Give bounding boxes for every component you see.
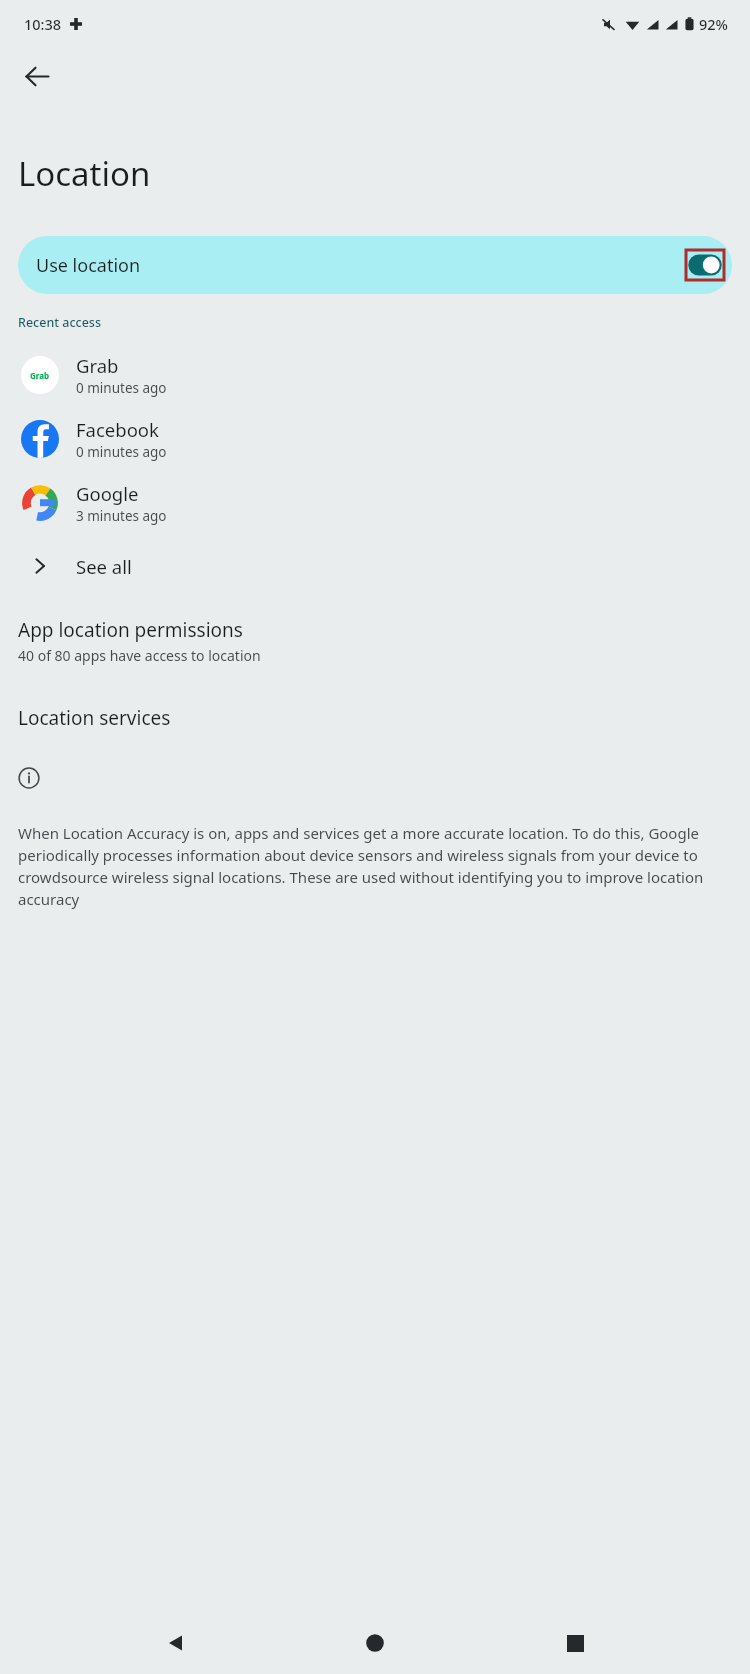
button[interactable]: Location services — [0, 685, 750, 751]
button[interactable]: Back — [152, 1619, 200, 1667]
staticText: Use location — [36, 253, 141, 278]
button[interactable]: Google — [0, 471, 750, 535]
staticText: 92% — [699, 14, 728, 34]
staticText: Recent access — [18, 314, 102, 331]
staticText: Grab — [30, 370, 50, 381]
staticText: App location permissions — [18, 617, 243, 643]
staticText: 40 of 80 apps have access to location — [18, 646, 261, 665]
button[interactable]: Facebook — [0, 407, 750, 471]
button[interactable]: Use location — [18, 236, 732, 294]
staticText: 0 minutes ago — [76, 443, 167, 461]
staticText: Grab — [76, 353, 119, 378]
staticText: 0 minutes ago — [76, 379, 167, 397]
staticText: When Location Accuracy is on, apps and s… — [18, 823, 728, 910]
button[interactable]: Back — [8, 47, 66, 105]
staticText: Facebook — [76, 417, 159, 442]
button[interactable]: Recent apps — [551, 1619, 599, 1667]
staticText: See all — [76, 554, 132, 579]
staticText: Location — [18, 151, 151, 196]
staticText: 10:38 — [24, 14, 62, 34]
button[interactable]: Home — [351, 1619, 399, 1667]
button[interactable]: Use location — [686, 250, 724, 280]
button[interactable]: App location permissions — [0, 597, 750, 685]
staticText: Google — [76, 481, 139, 506]
button[interactable]: Grab — [0, 343, 750, 407]
staticText: 3 minutes ago — [76, 507, 167, 525]
button[interactable]: See all — [0, 535, 750, 597]
staticText: Location services — [18, 705, 171, 731]
